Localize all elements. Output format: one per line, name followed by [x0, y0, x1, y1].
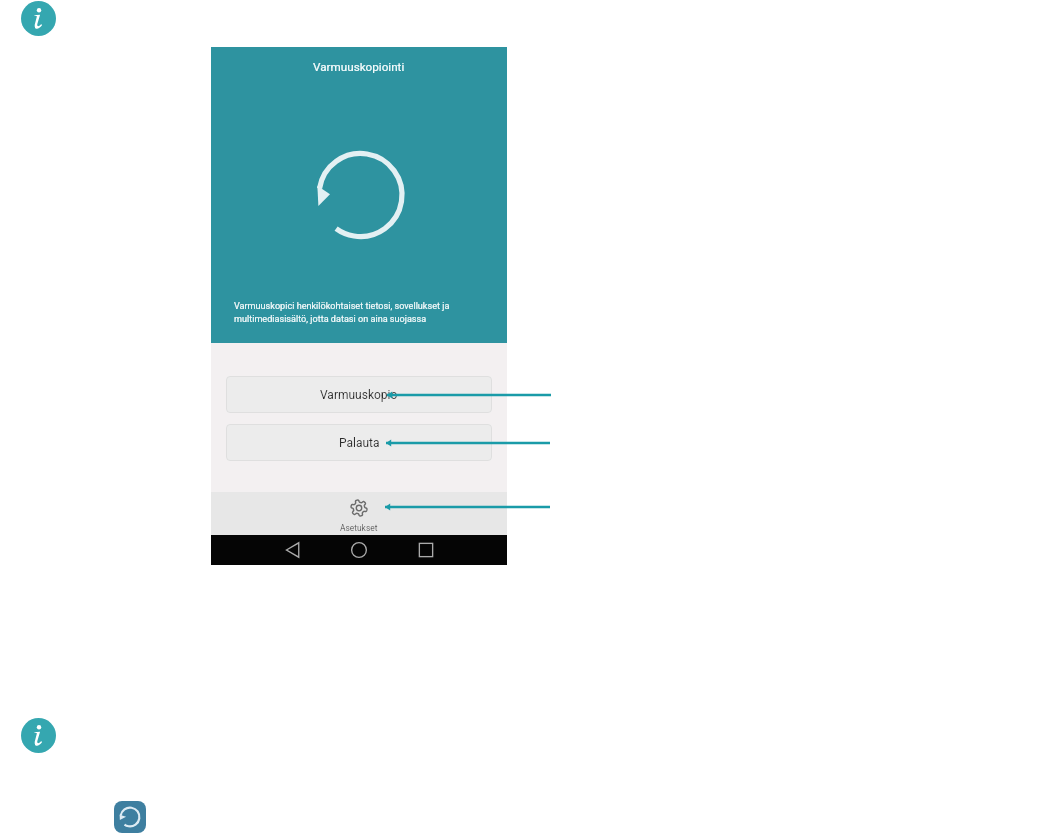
button[interactable]: Palauta	[226, 424, 492, 461]
staticText: Varmuuskopiointi	[313, 60, 405, 74]
button[interactable]: Home	[339, 535, 379, 565]
staticText: Varmuuskopici henkilökohtaiset tietosi, …	[234, 301, 450, 324]
button[interactable]: Info	[21, 718, 56, 753]
button[interactable]: Recent apps	[406, 535, 446, 565]
other: Settings	[350, 499, 368, 517]
button[interactable]: Info	[21, 1, 56, 36]
button[interactable]: Varmuuskopio	[226, 376, 492, 413]
staticText: Varmuuskopio	[320, 388, 398, 402]
button[interactable]: Back	[273, 535, 313, 565]
staticText: Palauta	[339, 436, 380, 450]
staticText: Asetukset	[340, 523, 378, 533]
button[interactable]: Settings	[314, 495, 404, 536]
button[interactable]: Backup app	[114, 801, 146, 833]
